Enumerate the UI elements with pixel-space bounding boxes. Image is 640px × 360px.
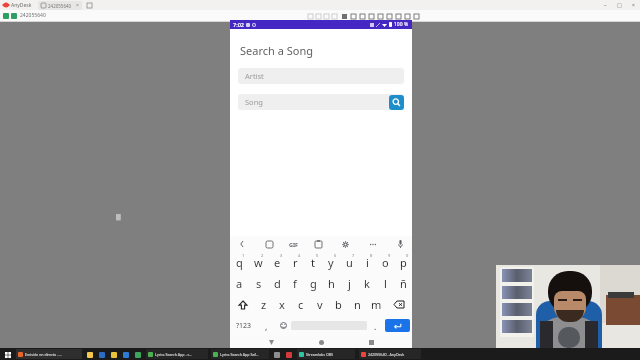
button[interactable]: Toolbar action bbox=[403, 12, 411, 20]
button[interactable]: – bbox=[598, 0, 612, 10]
button[interactable]: Stickers bbox=[261, 236, 277, 252]
button[interactable]: Taskbar app bbox=[272, 350, 281, 359]
button[interactable]: z bbox=[255, 294, 273, 315]
button[interactable]: Toolbar action bbox=[367, 12, 375, 20]
staticText: 0 bbox=[406, 253, 409, 258]
button[interactable]: 2 bbox=[249, 252, 268, 273]
button[interactable]: Song bbox=[238, 94, 404, 110]
button[interactable]: Toolbar action bbox=[349, 12, 357, 20]
button[interactable]: 5 bbox=[304, 252, 322, 273]
staticText: o bbox=[382, 255, 389, 270]
staticText: y bbox=[328, 255, 334, 270]
staticText: 9 bbox=[388, 253, 391, 258]
button[interactable]: x bbox=[273, 294, 291, 315]
button[interactable]: l bbox=[376, 273, 394, 294]
button[interactable]: Taskbar app bbox=[85, 350, 94, 359]
staticText: m bbox=[371, 297, 382, 312]
button[interactable]: Enter bbox=[385, 319, 410, 332]
button[interactable]: c bbox=[291, 294, 310, 315]
staticText: v bbox=[317, 297, 323, 312]
button[interactable]: Toolbar action bbox=[412, 12, 420, 20]
button[interactable]: Previous bbox=[234, 236, 250, 252]
button[interactable]: Home bbox=[312, 336, 330, 348]
button[interactable]: New tab bbox=[87, 3, 92, 8]
button[interactable]: h bbox=[322, 273, 340, 294]
button[interactable]: 242055640 bbox=[41, 1, 79, 10]
staticText: 7 bbox=[352, 253, 355, 258]
button[interactable]: 3 bbox=[268, 252, 286, 273]
button[interactable]: m bbox=[367, 294, 386, 315]
button[interactable]: Backspace bbox=[386, 294, 412, 315]
staticText: q bbox=[236, 255, 243, 270]
button[interactable]: s bbox=[249, 273, 268, 294]
button[interactable]: Toolbar action bbox=[385, 12, 393, 20]
button[interactable]: Lyrics Search App - c... bbox=[148, 349, 206, 359]
button[interactable]: Recents bbox=[362, 336, 380, 348]
button[interactable]: Taskbar app bbox=[97, 350, 106, 359]
button[interactable]: v bbox=[310, 294, 329, 315]
button[interactable]: a bbox=[230, 273, 249, 294]
button[interactable]: Emoji bbox=[275, 315, 291, 336]
button[interactable]: Toolbar action bbox=[394, 12, 402, 20]
staticText: Emisión en directo - ... bbox=[25, 352, 63, 357]
staticText: 2 bbox=[261, 253, 264, 258]
button[interactable]: Toolbar action bbox=[306, 12, 314, 20]
button[interactable]: Toolbar action bbox=[376, 12, 384, 20]
button[interactable]: Clipboard bbox=[310, 236, 326, 252]
button[interactable]: Shift bbox=[230, 294, 255, 315]
button[interactable]: × bbox=[626, 0, 640, 10]
button[interactable]: , bbox=[258, 315, 275, 336]
button[interactable]: 7 bbox=[340, 252, 358, 273]
staticText: AnyDesk bbox=[11, 2, 32, 9]
button[interactable]: Taskbar app bbox=[121, 350, 130, 359]
button[interactable]: 8 bbox=[358, 252, 376, 273]
button[interactable]: Streamlabs OBS bbox=[299, 349, 353, 359]
button[interactable]: GIF bbox=[289, 241, 299, 248]
button[interactable]: Start bbox=[2, 349, 13, 360]
button[interactable]: g bbox=[304, 273, 322, 294]
button[interactable]: j bbox=[340, 273, 358, 294]
button[interactable]: Taskbar app bbox=[109, 350, 118, 359]
button[interactable]: 9 bbox=[376, 252, 394, 273]
button[interactable]: n bbox=[348, 294, 367, 315]
staticText: 242055640 bbox=[48, 3, 72, 9]
button[interactable]: Toolbar action bbox=[330, 12, 338, 20]
button[interactable]: ?123 bbox=[230, 315, 258, 336]
button[interactable]: Emisión en directo - ... bbox=[18, 349, 80, 359]
button[interactable]: Toolbar action bbox=[322, 12, 330, 20]
button[interactable]: Lyrics Search App Saf... bbox=[213, 349, 267, 359]
button[interactable]: Settings bbox=[337, 236, 353, 252]
button[interactable]: f bbox=[286, 273, 304, 294]
button[interactable]: Taskbar app bbox=[133, 350, 142, 359]
button[interactable]: Toolbar action bbox=[314, 12, 322, 20]
button[interactable]: d bbox=[268, 273, 286, 294]
button[interactable]: Artist bbox=[238, 68, 404, 84]
staticText: f bbox=[293, 276, 297, 291]
staticText: 5 bbox=[316, 253, 319, 258]
staticText: b bbox=[335, 297, 342, 312]
button[interactable]: Voice input bbox=[392, 236, 408, 252]
staticText: i bbox=[366, 255, 369, 270]
staticText: c bbox=[298, 297, 304, 312]
button[interactable]: Back bbox=[262, 336, 280, 348]
button[interactable]: 4 bbox=[286, 252, 304, 273]
button[interactable]: k bbox=[358, 273, 376, 294]
button[interactable]: 242055640 - AnyDesk bbox=[361, 349, 419, 359]
button[interactable]: 0 bbox=[394, 252, 412, 273]
staticText: □ bbox=[617, 2, 622, 8]
button[interactable]: Toolbar action bbox=[340, 12, 348, 20]
staticText: a bbox=[236, 276, 243, 291]
button[interactable]: b bbox=[329, 294, 348, 315]
button[interactable]: 1 bbox=[230, 252, 249, 273]
button[interactable]: Taskbar app bbox=[284, 350, 293, 359]
button[interactable]: More bbox=[365, 236, 381, 252]
staticText: ñ bbox=[400, 276, 407, 291]
button[interactable]: □ bbox=[612, 0, 626, 10]
button[interactable]: Toolbar action bbox=[358, 12, 366, 20]
button[interactable]: ñ bbox=[394, 273, 412, 294]
staticText: Search a Song bbox=[240, 43, 313, 58]
button[interactable]: Search bbox=[389, 95, 404, 110]
button[interactable]: 6 bbox=[322, 252, 340, 273]
button[interactable]: . bbox=[367, 315, 383, 336]
